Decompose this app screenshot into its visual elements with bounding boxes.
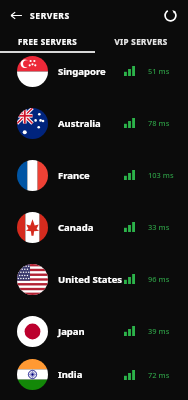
staticText: Japan: [58, 325, 85, 338]
staticText: 33 ms: [148, 222, 170, 232]
staticText: Canada: [58, 221, 94, 234]
staticText: 78 ms: [148, 118, 170, 128]
staticText: 39 ms: [148, 326, 170, 336]
button[interactable]: Australia: [0, 97, 188, 149]
staticText: SERVERS: [30, 10, 70, 22]
staticText: 51 ms: [148, 66, 170, 76]
button[interactable]: VIP SERVERS: [94, 30, 188, 53]
staticText: Singapore: [58, 65, 106, 78]
button[interactable]: Back: [6, 6, 74, 25]
button[interactable]: France: [0, 149, 188, 201]
other: Back: [10, 9, 23, 22]
staticText: United States: [58, 273, 123, 286]
staticText: FREE SERVERS: [18, 36, 77, 47]
button[interactable]: FREE SERVERS: [0, 30, 94, 53]
staticText: 96 ms: [148, 274, 170, 284]
button[interactable]: India: [0, 357, 188, 392]
staticText: Australia: [58, 117, 101, 130]
button[interactable]: Refresh: [159, 4, 182, 27]
button[interactable]: United States: [0, 253, 188, 305]
staticText: 72 ms: [148, 370, 170, 380]
staticText: France: [58, 169, 90, 182]
button[interactable]: Japan: [0, 305, 188, 357]
staticText: VIP SERVERS: [114, 36, 168, 47]
button[interactable]: Singapore: [0, 45, 188, 97]
staticText: 103 ms: [148, 170, 174, 180]
button[interactable]: Canada: [0, 201, 188, 253]
staticText: India: [58, 368, 83, 381]
